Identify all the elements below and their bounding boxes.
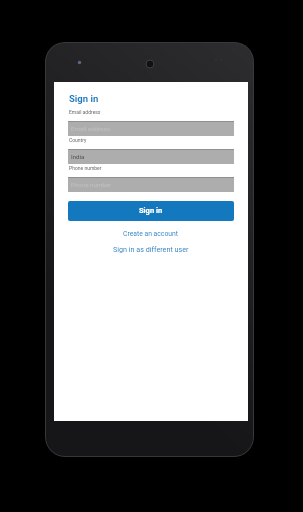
staticText: Sign in	[139, 206, 163, 215]
button[interactable]: Sign in	[68, 201, 234, 221]
staticText: India	[71, 153, 85, 160]
button[interactable]: Create an account	[54, 229, 248, 238]
button[interactable]: Email address	[68, 121, 234, 136]
staticText: Sign in as different user	[113, 245, 189, 253]
staticText: Create an account	[123, 230, 179, 238]
staticText: Phone number	[69, 165, 102, 171]
button[interactable]: India	[68, 149, 234, 164]
button[interactable]: Sign in as different user	[54, 244, 248, 253]
staticText: Sign in	[69, 93, 99, 104]
staticText: Country	[69, 137, 87, 143]
button[interactable]: Phone number	[68, 177, 234, 192]
staticText: Email address	[69, 109, 101, 115]
staticText: Email address	[71, 125, 110, 132]
staticText: Phone number	[71, 181, 112, 188]
